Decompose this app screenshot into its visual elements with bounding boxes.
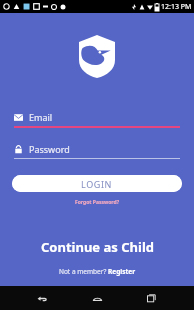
button[interactable]: Home [84, 286, 110, 310]
other: App logo [79, 35, 115, 78]
button[interactable]: Continue as Child [33, 235, 162, 259]
staticText: LOGIN [81, 178, 113, 190]
button[interactable]: Email [14, 110, 180, 128]
staticText: 12:13 PM [161, 2, 192, 12]
staticText: Password [29, 143, 70, 155]
button[interactable]: Forgot Password? [73, 197, 122, 208]
staticText: Email [29, 111, 53, 123]
button[interactable]: Password [14, 142, 180, 159]
button[interactable]: Recents [139, 286, 165, 310]
button[interactable]: LOGIN [12, 175, 182, 192]
staticText: Forgot Password? [75, 199, 120, 206]
staticText: Not a member? [59, 267, 108, 276]
button[interactable]: Not a member? [53, 265, 142, 278]
button[interactable]: Back [29, 286, 55, 310]
staticText: Register [108, 267, 136, 276]
staticText: Continue as Child [41, 238, 154, 256]
